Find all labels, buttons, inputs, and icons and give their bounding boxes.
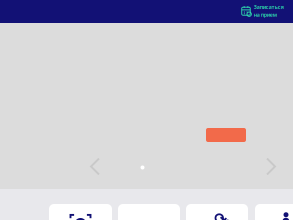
button[interactable]: Доступ [186, 204, 248, 220]
button[interactable]: Записаться [241, 3, 284, 18]
button[interactable]: Назад [90, 157, 100, 175]
button[interactable]: Сканировать [49, 204, 112, 220]
staticText: на прием [254, 11, 277, 18]
button[interactable]: Профиль [255, 204, 293, 220]
button[interactable]: Баннер [0, 23, 293, 189]
button[interactable]: Вперёд [266, 157, 276, 175]
staticText: Записаться [254, 3, 284, 11]
button[interactable]: Подробнее [206, 128, 246, 142]
